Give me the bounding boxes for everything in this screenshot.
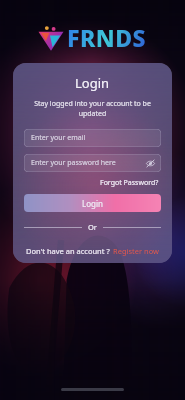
staticText: FRNDS	[67, 22, 147, 53]
staticText: Or	[88, 222, 97, 232]
staticText: Stay logged into your account to be upda…	[24, 99, 161, 119]
button[interactable]: Register now	[110, 245, 160, 257]
staticText: Don't have an account ?	[26, 246, 110, 256]
staticText: Forgot Password?	[100, 178, 159, 188]
button[interactable]: Toggle password visibility	[145, 158, 156, 169]
button[interactable]: Login	[24, 194, 161, 212]
staticText: Enter your password here	[31, 158, 116, 168]
staticText: Login	[75, 74, 110, 92]
button[interactable]: Forgot Password?	[98, 177, 161, 189]
staticText: Enter your email	[31, 133, 86, 143]
button[interactable]: Enter your email	[24, 129, 161, 147]
button[interactable]: Enter your password here	[24, 154, 161, 172]
staticText: Register now	[113, 246, 159, 256]
staticText: Login	[82, 198, 103, 209]
